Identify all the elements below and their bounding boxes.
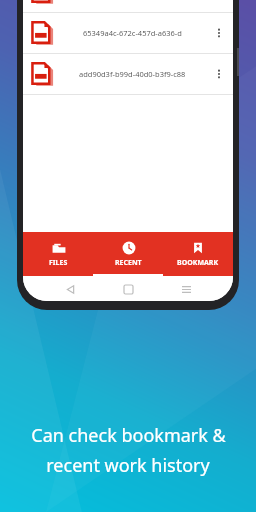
other: Files	[52, 241, 66, 255]
staticText: recent work history	[46, 453, 210, 478]
button[interactable]: 65349a4c-672c-457d-a636-d	[23, 13, 233, 54]
button[interactable]: 61428237-813a-456f-a808-5c	[23, 0, 233, 13]
button[interactable]: Recent	[93, 232, 163, 276]
button[interactable]: Bookmark	[163, 232, 233, 276]
button[interactable]: Back	[59, 278, 81, 300]
other: Bookmark	[191, 241, 205, 255]
button[interactable]: More options	[209, 64, 229, 84]
staticText: 65349a4c-672c-457d-a636-d	[83, 28, 182, 38]
staticText: FILES	[49, 258, 68, 268]
button[interactable]: Recent apps	[175, 278, 197, 300]
button[interactable]: Home	[117, 278, 139, 300]
staticText: RECENT	[115, 258, 142, 268]
staticText: Can check bookmark &	[31, 423, 226, 448]
staticText: BOOKMARK	[177, 258, 219, 268]
button[interactable]: Files	[23, 232, 93, 276]
other: Recent	[122, 241, 136, 255]
button[interactable]: More options	[209, 23, 229, 43]
button[interactable]: add90d3f-b99d-40d0-b3f9-c88	[23, 54, 233, 95]
staticText: add90d3f-b99d-40d0-b3f9-c88	[79, 69, 186, 79]
